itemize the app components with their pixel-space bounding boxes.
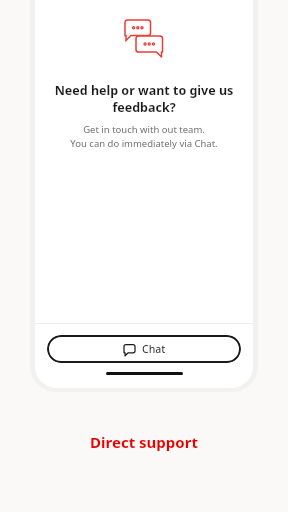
other: Chat <box>123 343 136 356</box>
staticText: Need help or want to give us feedback? <box>49 82 239 116</box>
staticText: Direct support <box>0 432 288 452</box>
button[interactable]: Chat <box>47 335 241 363</box>
staticText: Get in touch with out team. You can do i… <box>49 123 239 149</box>
staticText: Chat <box>142 342 166 356</box>
